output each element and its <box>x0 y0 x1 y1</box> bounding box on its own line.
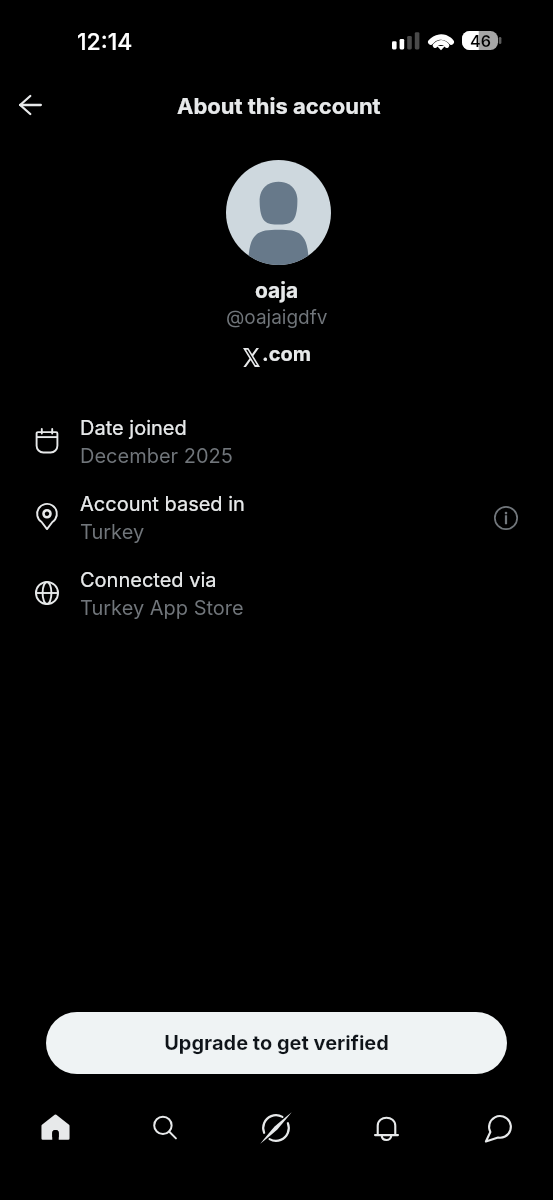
staticText: 46 <box>470 31 491 50</box>
staticText: Connected via <box>80 568 217 592</box>
button[interactable]: Notifications <box>331 1102 442 1154</box>
staticText: December 2025 <box>80 444 233 468</box>
button[interactable]: Home <box>0 1102 110 1154</box>
staticText: Turkey App Store <box>80 596 244 620</box>
staticText: Upgrade to get verified <box>164 1031 389 1055</box>
button[interactable]: Messages <box>442 1102 553 1154</box>
staticText: About this account <box>177 93 381 120</box>
staticText: Date joined <box>80 416 187 440</box>
staticText: Account based in <box>80 492 245 516</box>
staticText: 12:14 <box>77 28 133 56</box>
button[interactable]: Upgrade to get verified <box>46 1012 507 1074</box>
staticText: .com <box>262 342 311 366</box>
staticText: Turkey <box>80 520 145 544</box>
button[interactable]: Date joined <box>0 404 553 480</box>
button[interactable]: Back <box>8 83 52 127</box>
staticText: oaja <box>255 278 299 303</box>
button[interactable]: More information <box>484 496 528 540</box>
button[interactable]: Grok <box>220 1102 331 1154</box>
button[interactable]: Connected via <box>0 556 553 632</box>
button[interactable]: Account based in <box>0 480 553 556</box>
button[interactable]: Profile photo <box>226 160 331 265</box>
staticText: @oajaigdfv <box>226 306 328 329</box>
button[interactable]: Search <box>110 1102 220 1154</box>
